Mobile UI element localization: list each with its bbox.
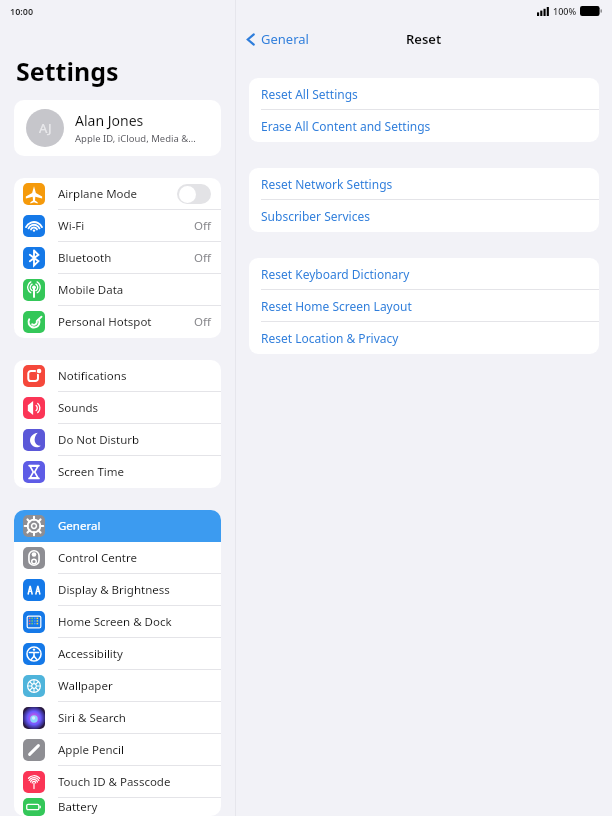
staticText: Accessibility bbox=[58, 646, 123, 662]
button[interactable]: Display & Brightness bbox=[14, 574, 221, 606]
staticText: Off bbox=[194, 250, 211, 266]
button[interactable]: Control Centre bbox=[14, 542, 221, 574]
button[interactable]: Notifications bbox=[14, 360, 221, 392]
staticText: Reset Network Settings bbox=[261, 176, 393, 192]
button[interactable]: Siri & Search bbox=[14, 702, 221, 734]
button[interactable]: Reset Home Screen Layout bbox=[249, 290, 599, 322]
staticText: Reset All Settings bbox=[261, 86, 358, 102]
staticText: AJ bbox=[39, 119, 52, 137]
button[interactable]: Subscriber Services bbox=[249, 200, 599, 232]
button[interactable]: Home Screen & Dock bbox=[14, 606, 221, 638]
staticText: Settings bbox=[16, 54, 119, 88]
button[interactable]: Back to General bbox=[246, 30, 309, 48]
staticText: General bbox=[261, 30, 309, 48]
button[interactable]: Sounds bbox=[14, 392, 221, 424]
button[interactable]: Reset Location & Privacy bbox=[249, 322, 599, 354]
button[interactable]: Erase All Content and Settings bbox=[249, 110, 599, 142]
button[interactable]: Accessibility bbox=[14, 638, 221, 670]
button[interactable]: Apple Pencil bbox=[14, 734, 221, 766]
button[interactable]: Reset Keyboard Dictionary bbox=[249, 258, 599, 290]
button[interactable]: Do Not Disturb bbox=[14, 424, 221, 456]
staticText: Screen Time bbox=[58, 464, 125, 480]
button[interactable]: Personal Hotspot bbox=[14, 306, 221, 338]
staticText: Personal Hotspot bbox=[58, 314, 152, 330]
staticText: Wallpaper bbox=[58, 678, 113, 694]
staticText: Erase All Content and Settings bbox=[261, 118, 431, 134]
button[interactable]: Airplane Mode bbox=[14, 178, 221, 210]
button[interactable]: Reset All Settings bbox=[249, 78, 599, 110]
staticText: Subscriber Services bbox=[261, 208, 370, 224]
button[interactable]: Reset Network Settings bbox=[249, 168, 599, 200]
staticText: Apple Pencil bbox=[58, 742, 124, 758]
staticText: Reset Location & Privacy bbox=[261, 330, 399, 346]
staticText: Off bbox=[194, 218, 211, 234]
button[interactable]: Wi-Fi bbox=[14, 210, 221, 242]
staticText: Airplane Mode bbox=[58, 186, 138, 202]
staticText: Notifications bbox=[58, 368, 127, 384]
button[interactable]: Mobile Data bbox=[14, 274, 221, 306]
staticText: Touch ID & Passcode bbox=[58, 774, 171, 790]
button[interactable]: Bluetooth bbox=[14, 242, 221, 274]
staticText: Reset bbox=[406, 30, 442, 48]
staticText: Home Screen & Dock bbox=[58, 614, 172, 630]
other: Back to General bbox=[246, 32, 256, 47]
staticText: Display & Brightness bbox=[58, 582, 170, 598]
staticText: General bbox=[58, 518, 101, 534]
staticText: Alan Jones bbox=[75, 111, 144, 130]
button[interactable]: Battery bbox=[14, 798, 221, 816]
staticText: Sounds bbox=[58, 400, 99, 416]
button[interactable] bbox=[177, 184, 211, 204]
staticText: Bluetooth bbox=[58, 250, 112, 266]
staticText: Reset Keyboard Dictionary bbox=[261, 266, 410, 282]
staticText: Off bbox=[194, 314, 211, 330]
staticText: Apple ID, iCloud, Media &… bbox=[75, 132, 196, 145]
button[interactable]: Wallpaper bbox=[14, 670, 221, 702]
staticText: Wi-Fi bbox=[58, 218, 85, 234]
staticText: Control Centre bbox=[58, 550, 137, 566]
button[interactable]: Screen Time bbox=[14, 456, 221, 488]
button[interactable]: General bbox=[14, 510, 221, 542]
button[interactable]: AJ bbox=[14, 100, 221, 156]
staticText: 100% bbox=[553, 5, 577, 17]
staticText: Reset Home Screen Layout bbox=[261, 298, 412, 314]
staticText: 10:00 bbox=[10, 5, 34, 17]
staticText: Mobile Data bbox=[58, 282, 124, 298]
staticText: Battery bbox=[58, 799, 98, 815]
staticText: Siri & Search bbox=[58, 710, 126, 726]
staticText: Do Not Disturb bbox=[58, 432, 140, 448]
button[interactable]: Touch ID & Passcode bbox=[14, 766, 221, 798]
